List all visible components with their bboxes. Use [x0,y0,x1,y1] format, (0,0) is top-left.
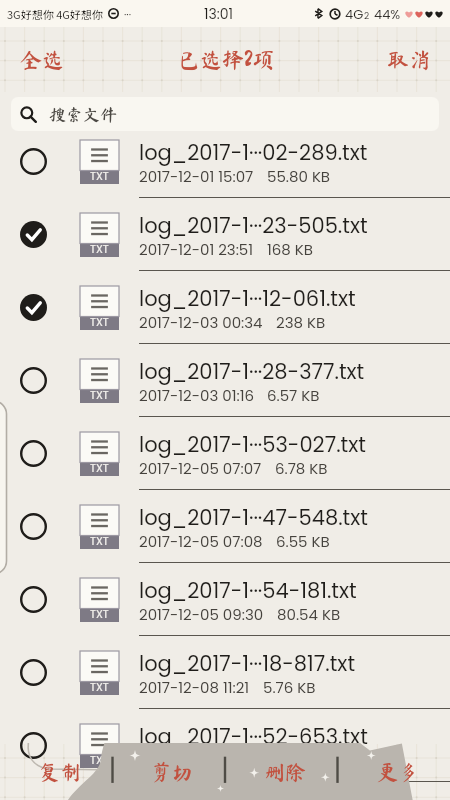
staticText: 2017-12-05 07:07 [139,458,262,479]
button[interactable]: 取消 [368,27,450,92]
button[interactable]: 更多 [337,743,450,800]
staticText: 2017-12-08 11:43 [139,750,254,771]
staticText: TXT [90,460,109,475]
staticText: 取消 [387,49,432,71]
button[interactable]: TXT [0,344,450,417]
staticText: 6.55 KB [276,531,330,552]
staticText: log_2017-1···54-181.txt [139,576,357,605]
staticText: 2 [364,10,370,23]
staticText: 更多 [377,762,419,783]
staticText: 2017-12-01 23:51 [139,239,254,260]
staticText: TXT [90,241,109,256]
button[interactable]: TXT [0,271,450,344]
staticText: TXT [90,168,109,183]
button[interactable]: TXT [0,490,450,563]
staticText: 3G好想你 4G好想你 [7,6,103,22]
staticText: 55.80 KB [267,166,331,187]
staticText: 复制 [39,762,81,783]
staticText: TXT [90,314,109,329]
staticText: 2017-12-08 11:21 [139,677,250,698]
staticText: 2017-12-01 15:07 [139,166,254,187]
staticText: TXT [90,533,109,548]
staticText: 全选 [20,49,65,71]
staticText: 2017-12-05 07:08 [139,531,263,552]
button[interactable]: 剪切 [112,743,224,800]
button[interactable]: 搜索文件 [11,97,439,131]
staticText: 5.76 KB [263,677,316,698]
staticText: 238 KB [276,312,326,333]
staticText: 2017-12-03 01:16 [139,385,254,406]
staticText: TXT [90,606,109,621]
staticText: log_2017-1···28-377.txt [139,357,365,386]
button[interactable]: TXT [0,198,450,271]
staticText: 已选择2项 [178,49,275,71]
staticText: log_2017-1···47-548.txt [139,503,368,532]
staticText: 6.57 KB [267,385,320,406]
staticText: log_2017-1···02-289.txt [139,138,368,167]
staticText: TXT [90,387,109,402]
staticText: 44% [374,5,401,23]
staticText: 4G [345,5,364,23]
button[interactable]: TXT [0,636,450,709]
staticText: log_2017-1···23-505.txt [139,211,368,240]
staticText: 搜索文件 [49,106,117,123]
staticText: 删除 [264,762,306,783]
button[interactable]: TXT [0,125,450,198]
staticText: TXT [90,679,109,694]
button[interactable]: TXT [0,563,450,636]
staticText: 168 KB [267,239,313,260]
button[interactable]: TXT [0,417,450,490]
staticText: 13:01 [204,4,233,24]
staticText: 剪切 [151,762,193,783]
button[interactable]: TXT [0,709,450,782]
staticText: log_2017-1···52-653.txt [139,722,368,751]
staticText: 9.51 KB [267,750,317,771]
button[interactable]: 全选 [0,27,84,92]
staticText: 2017-12-03 00:34 [139,312,263,333]
button[interactable]: 复制 [0,743,112,800]
staticText: log_2017-1···18-817.txt [139,649,356,678]
staticText: TXT [90,752,109,767]
staticText: ··· [124,6,131,21]
staticText: 6.78 KB [275,458,328,479]
staticText: log_2017-1···53-027.txt [139,430,366,459]
staticText: log_2017-1···12-061.txt [139,284,356,313]
staticText: 80.54 KB [277,604,341,625]
staticText: 2017-12-05 09:30 [139,604,264,625]
button[interactable]: 删除 [224,743,337,800]
